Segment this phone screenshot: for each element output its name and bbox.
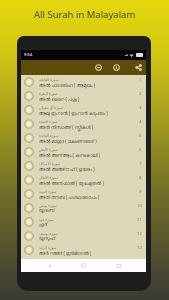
button[interactable]: Info	[111, 62, 122, 73]
button[interactable]: سورة الأعراف	[21, 159, 146, 173]
staticText: അൽ അന്ആം ( കന്നുകാലി )	[39, 152, 101, 158]
button[interactable]: سورة المائدة	[21, 131, 146, 145]
staticText: 11	[137, 217, 142, 223]
button[interactable]: سورة التوبة	[21, 187, 146, 201]
staticText: യൂസുഫ്	[39, 236, 56, 241]
staticText: 8	[139, 175, 142, 181]
staticText: سورة النساء	[39, 119, 58, 124]
staticText: سورة آل عمران	[39, 105, 63, 110]
staticText: سورة البقرة	[39, 91, 58, 96]
staticText: 13	[137, 245, 142, 251]
staticText: سورة المائدة	[39, 133, 59, 138]
button[interactable]: سورة آل عمران	[21, 103, 146, 117]
staticText: ഹൂദ്	[39, 222, 48, 227]
button[interactable]: سورة الفاتحة	[21, 75, 146, 89]
button[interactable]: سورة البقرة	[21, 89, 146, 103]
button[interactable]: سورة الأنفال	[21, 173, 146, 187]
button[interactable]: سورة الرعد	[21, 243, 146, 257]
button[interactable]: سورة يوسف	[21, 229, 146, 243]
staticText: അൽ ബഖറ ( പശു )	[39, 96, 80, 102]
button[interactable]: سورة الأنعام	[21, 145, 146, 159]
staticText: 9	[139, 189, 142, 195]
staticText: سورة التوبة	[39, 189, 57, 194]
staticText: അർ റഅ്ദ് ( ഇടിമിന്നൽ )	[39, 250, 92, 256]
staticText: 10	[137, 203, 142, 209]
staticText: ആലു ഇംറാൻ ( ഇംറാൻ കുടുംബം )	[39, 110, 108, 116]
staticText: അൽ അന്ഫാൽ ( യുദ്ധമുതൽ )	[39, 180, 104, 186]
staticText: അൽ മാഇദ ( ഭക്ഷണത്തട് )	[39, 138, 97, 144]
button[interactable]: Recents	[112, 259, 125, 272]
staticText: അൻ നിസാഅ് ( സ്ത്രീകൾ )	[39, 124, 94, 130]
staticText: 7	[139, 161, 142, 167]
button[interactable]: سورة النساء	[21, 117, 146, 131]
staticText: അൽ ഫാത്തിഹ ( ആമുഖം )	[39, 82, 96, 88]
button[interactable]: Home	[77, 259, 90, 272]
staticText: 12	[137, 231, 142, 237]
button[interactable]: Do not disturb	[93, 62, 104, 73]
staticText: سورة يوسف	[39, 231, 59, 236]
button[interactable]: سورة هود	[21, 215, 146, 229]
staticText: سورة الرعد	[39, 245, 57, 250]
staticText: 3	[139, 105, 142, 111]
staticText: All Surah in Malayalam	[34, 8, 136, 21]
staticText: 2	[139, 91, 142, 97]
staticText: 4	[139, 119, 142, 125]
staticText: سورة الأعراف	[39, 161, 61, 166]
staticText: سورة الأنفال	[39, 175, 58, 180]
staticText: 6	[139, 147, 142, 153]
staticText: سورة الأنعام	[39, 147, 58, 152]
staticText: യൂനുസ്	[39, 208, 55, 213]
staticText: 1	[139, 77, 142, 83]
staticText: അത് തൗബ ( പശ്ചാത്താപം )	[39, 194, 100, 200]
staticText: അൽ അഅ്റാഫ് ( ഉയരം )	[39, 166, 95, 172]
staticText: 5	[139, 133, 142, 139]
staticText: 9:54	[24, 52, 33, 58]
button[interactable]: Share	[133, 62, 144, 73]
staticText: سورة هود	[39, 217, 54, 222]
staticText: سورة الفاتحة	[39, 77, 59, 82]
staticText: سورة يونس	[39, 203, 57, 208]
button[interactable]: سورة يونس	[21, 201, 146, 215]
button[interactable]: Back	[43, 259, 56, 272]
